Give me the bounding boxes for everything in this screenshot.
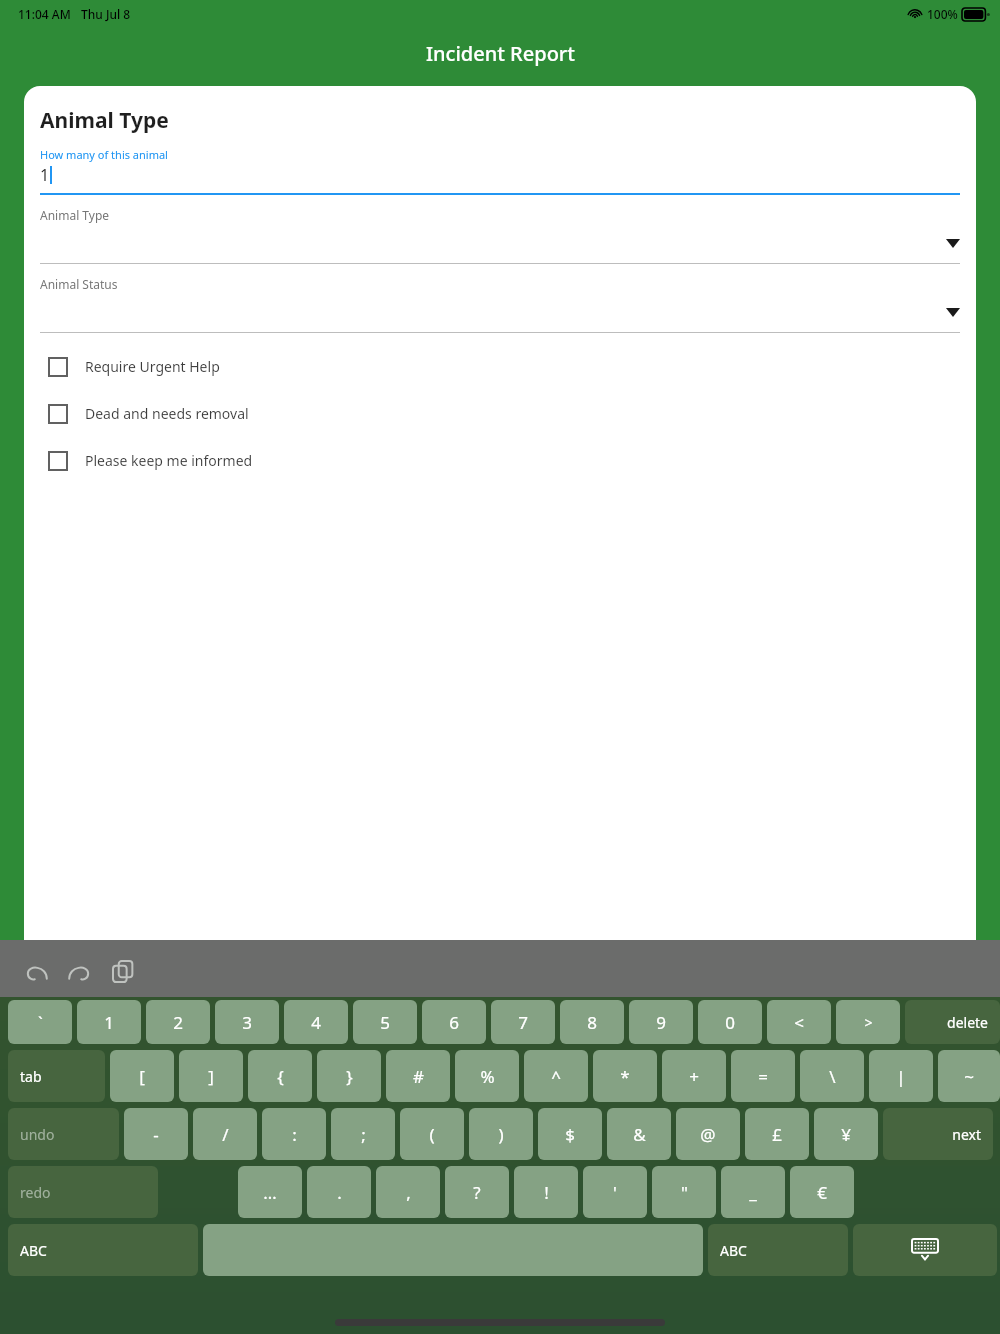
button[interactable]: How many of this animal [40, 147, 960, 195]
staticText: " [681, 1181, 688, 1204]
staticText: Please keep me informed [85, 451, 253, 470]
button[interactable]: } [317, 1050, 381, 1102]
button[interactable]: 2 [146, 1000, 210, 1044]
button[interactable]: undo [8, 1108, 119, 1160]
button[interactable]: 9 [629, 1000, 693, 1044]
button[interactable]: redo [8, 1166, 158, 1218]
button[interactable]: tab [8, 1050, 105, 1102]
button[interactable]: Paste [106, 954, 142, 990]
button[interactable]: | [869, 1050, 933, 1102]
button[interactable]: ' [583, 1166, 647, 1218]
button[interactable]: < [767, 1000, 831, 1044]
staticText: | [896, 1065, 906, 1088]
button[interactable]: 3 [215, 1000, 279, 1044]
button[interactable]: ! [514, 1166, 578, 1218]
staticText: Dead and needs removal [85, 404, 249, 423]
button[interactable]: Require Urgent Help [40, 343, 960, 390]
staticText: redo [20, 1183, 146, 1202]
staticText: 2 [173, 1011, 183, 1034]
staticText: > [864, 1013, 873, 1032]
button[interactable]: ~ [938, 1050, 1000, 1102]
staticText: ' [613, 1181, 617, 1204]
staticText: ¥ [841, 1123, 851, 1146]
staticText: undo [20, 1125, 107, 1144]
staticText: * [620, 1065, 630, 1088]
button[interactable]: ] [179, 1050, 243, 1102]
button[interactable]: 5 [353, 1000, 417, 1044]
button[interactable]: \ [800, 1050, 864, 1102]
button[interactable]: ^ [524, 1050, 588, 1102]
staticText: % [480, 1065, 495, 1088]
button[interactable]: % [455, 1050, 519, 1102]
button[interactable]: ABC [708, 1224, 848, 1276]
staticText: ABC [720, 1241, 836, 1260]
button[interactable]: 1 [77, 1000, 141, 1044]
button[interactable]: ( [400, 1108, 464, 1160]
staticText: Animal Type [40, 106, 169, 135]
staticText: How many of this animal [40, 147, 168, 162]
button[interactable]: € [790, 1166, 854, 1218]
button[interactable]: - [124, 1108, 188, 1160]
staticText: ? [473, 1181, 481, 1204]
staticText: ) [498, 1123, 504, 1146]
button[interactable]: ABC [8, 1224, 198, 1276]
button[interactable]: / [193, 1108, 257, 1160]
staticText: 1 [104, 1011, 114, 1034]
button[interactable]: Please keep me informed [40, 437, 960, 484]
staticText: 6 [449, 1011, 459, 1034]
button[interactable]: 6 [422, 1000, 486, 1044]
button[interactable]: 7 [491, 1000, 555, 1044]
staticText: _ [749, 1181, 757, 1204]
button[interactable]: ` [8, 1000, 72, 1044]
button[interactable]: Dead and needs removal [40, 390, 960, 437]
button[interactable]: 4 [284, 1000, 348, 1044]
button[interactable]: Animal Status [40, 264, 960, 333]
staticText: \ [829, 1065, 836, 1088]
button[interactable]: + [662, 1050, 726, 1102]
staticText: ( [429, 1123, 435, 1146]
button[interactable]: ? [445, 1166, 509, 1218]
button[interactable]: , [376, 1166, 440, 1218]
button[interactable]: £ [745, 1108, 809, 1160]
staticText: ` [38, 1011, 43, 1034]
staticText: 100% [927, 6, 958, 22]
staticText: { [277, 1065, 284, 1088]
button[interactable]: " [652, 1166, 716, 1218]
staticText: Thu Jul 8 [81, 6, 131, 22]
button[interactable]: ; [331, 1108, 395, 1160]
button[interactable]: * [593, 1050, 657, 1102]
button[interactable]: _ [721, 1166, 785, 1218]
button[interactable]: # [386, 1050, 450, 1102]
button[interactable]: $ [538, 1108, 602, 1160]
button[interactable]: Hide keyboard [853, 1224, 997, 1276]
button[interactable]: … [238, 1166, 302, 1218]
button[interactable]: > [836, 1000, 900, 1044]
button[interactable]: delete [905, 1000, 1000, 1044]
button[interactable]: : [262, 1108, 326, 1160]
button[interactable]: 8 [560, 1000, 624, 1044]
button[interactable]: [ [110, 1050, 174, 1102]
button[interactable]: { [248, 1050, 312, 1102]
button[interactable]: Animal Type [40, 195, 960, 264]
button[interactable]: ¥ [814, 1108, 878, 1160]
button[interactable]: . [307, 1166, 371, 1218]
staticText: : [292, 1123, 297, 1146]
button[interactable]: ) [469, 1108, 533, 1160]
button[interactable]: Undo [18, 954, 54, 990]
staticText: + [689, 1065, 699, 1088]
button[interactable]: Redo [62, 954, 98, 990]
staticText: Incident Report [426, 40, 575, 67]
staticText: . [337, 1181, 342, 1204]
staticText: tab [20, 1067, 93, 1086]
button[interactable]: next [883, 1108, 993, 1160]
button[interactable]: & [607, 1108, 671, 1160]
staticText: ^ [551, 1065, 561, 1088]
staticText: ! [544, 1181, 549, 1204]
button[interactable]: = [731, 1050, 795, 1102]
staticText: $ [565, 1123, 575, 1146]
staticText: = [758, 1065, 768, 1088]
staticText: # [413, 1065, 424, 1088]
button[interactable]: 0 [698, 1000, 762, 1044]
button[interactable]: @ [676, 1108, 740, 1160]
